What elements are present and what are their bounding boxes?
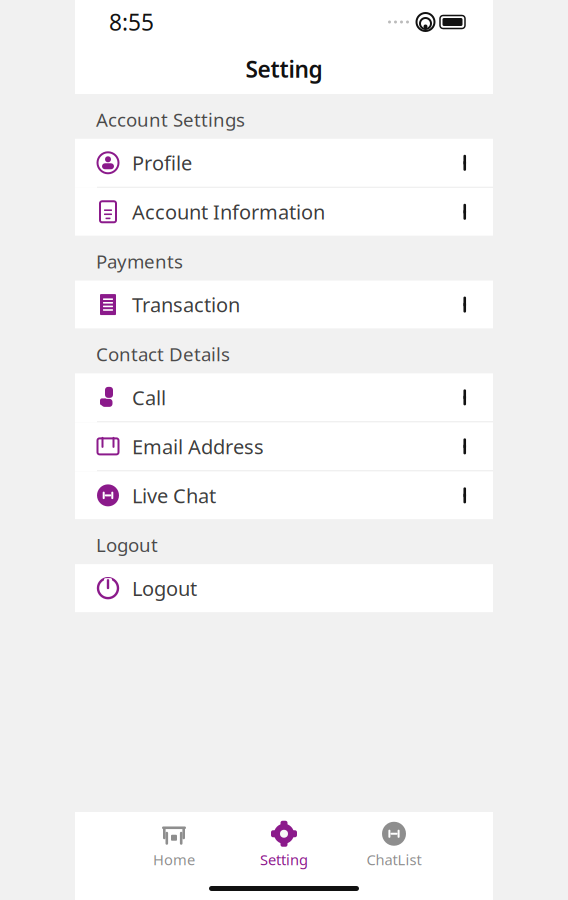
staticText: Call: [132, 384, 166, 411]
staticText: Logout: [132, 575, 197, 601]
button[interactable]: Transaction: [75, 281, 493, 329]
staticText: Live Chat: [132, 482, 216, 509]
staticText: Home: [153, 850, 195, 869]
button[interactable]: Home: [119, 820, 229, 870]
staticText: Logout: [96, 532, 158, 557]
staticText: Account Information: [132, 198, 325, 225]
staticText: Email Address: [132, 433, 264, 460]
button[interactable]: Setting: [229, 820, 339, 870]
staticText: Profile: [132, 149, 192, 176]
button[interactable]: ChatList: [339, 820, 449, 870]
staticText: Transaction: [132, 291, 240, 318]
staticText: Payments: [96, 249, 183, 274]
staticText: ChatList: [366, 850, 421, 869]
button[interactable]: Email Address: [75, 422, 493, 471]
staticText: Setting: [260, 850, 308, 869]
button[interactable]: Account Information: [75, 188, 493, 236]
staticText: Setting: [245, 54, 322, 84]
button[interactable]: Call: [75, 373, 493, 422]
staticText: Account Settings: [96, 107, 245, 132]
staticText: Contact Details: [96, 342, 230, 366]
staticText: 8:55: [109, 7, 154, 37]
button[interactable]: Profile: [75, 139, 493, 188]
button[interactable]: Logout: [75, 564, 493, 612]
button[interactable]: Live Chat: [75, 471, 493, 519]
